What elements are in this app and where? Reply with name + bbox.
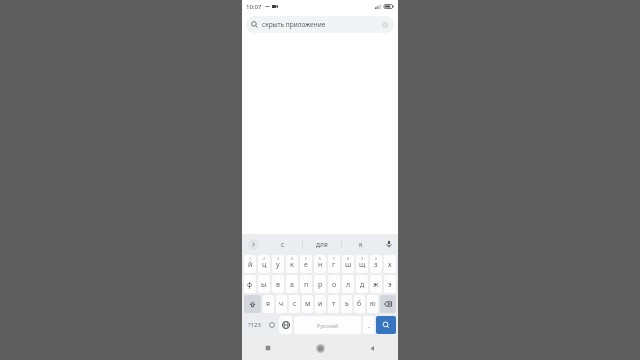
button[interactable]: с xyxy=(264,234,302,254)
button[interactable]: т xyxy=(328,295,339,313)
staticText: 10:07 xyxy=(246,3,262,11)
staticText: ш xyxy=(345,260,352,270)
staticText: п xyxy=(304,280,309,290)
button[interactable]: ч xyxy=(276,295,287,313)
staticText: ю xyxy=(370,299,376,309)
staticText: ф xyxy=(247,280,253,290)
staticText: р xyxy=(318,280,323,290)
staticText: к xyxy=(290,260,294,270)
button[interactable]: к xyxy=(342,234,380,254)
staticText: д xyxy=(360,280,365,290)
staticText: ч xyxy=(279,299,284,309)
button[interactable]: Back xyxy=(346,336,398,360)
button[interactable]: Voice input xyxy=(380,234,398,254)
staticText: . xyxy=(368,321,370,330)
button[interactable]: для xyxy=(303,234,341,254)
button[interactable]: Change language xyxy=(279,316,292,334)
button[interactable]: 7 xyxy=(328,255,340,273)
button[interactable]: ь xyxy=(341,295,352,313)
button[interactable]: 8 xyxy=(342,255,354,273)
button[interactable]: д xyxy=(356,275,368,293)
staticText: 6 xyxy=(319,256,322,261)
staticText: а xyxy=(290,280,294,290)
button[interactable]: 5 xyxy=(300,255,312,273)
staticText: к xyxy=(359,240,363,249)
staticText: в xyxy=(276,280,280,290)
staticText: б xyxy=(357,299,362,309)
staticText: м xyxy=(305,299,311,309)
staticText: 0 xyxy=(375,256,378,261)
staticText: 5 xyxy=(305,256,308,261)
button[interactable]: 3 xyxy=(272,255,284,273)
staticText: й xyxy=(248,260,253,270)
button[interactable]: ?123 xyxy=(244,316,265,334)
staticText: э xyxy=(388,280,392,290)
button[interactable]: х xyxy=(384,255,396,273)
button[interactable]: Русский xyxy=(294,316,361,334)
button[interactable]: ю xyxy=(367,295,378,313)
button[interactable]: а xyxy=(286,275,298,293)
staticText: ж xyxy=(373,280,379,290)
button[interactable]: 1 xyxy=(244,255,256,273)
staticText: н xyxy=(318,260,323,270)
button[interactable]: ы xyxy=(258,275,270,293)
staticText: х xyxy=(388,260,392,270)
staticText: ?123 xyxy=(248,321,261,329)
staticText: 2 xyxy=(263,256,266,261)
button[interactable]: п xyxy=(300,275,312,293)
button[interactable]: Emoji xyxy=(267,316,277,334)
button[interactable]: 0 xyxy=(370,255,382,273)
staticText: ц xyxy=(262,260,267,270)
staticText: 9 xyxy=(361,256,364,261)
staticText: щ xyxy=(359,260,366,270)
button[interactable]: 6 xyxy=(314,255,326,273)
button[interactable]: . xyxy=(363,316,374,334)
button[interactable]: More suggestions xyxy=(242,234,264,254)
button[interactable]: о xyxy=(328,275,340,293)
staticText: ь xyxy=(345,299,349,309)
button[interactable]: Search xyxy=(376,316,396,334)
button[interactable]: с xyxy=(289,295,300,313)
staticText: е xyxy=(304,260,308,270)
staticText: у xyxy=(276,260,280,270)
staticText: о xyxy=(332,280,337,290)
staticText: с xyxy=(281,240,285,249)
button[interactable]: Backspace xyxy=(380,295,396,313)
staticText: скрыть приложение xyxy=(262,20,326,29)
button[interactable]: 4 xyxy=(286,255,298,273)
staticText: г xyxy=(332,260,336,270)
button[interactable]: ж xyxy=(370,275,382,293)
staticText: 8 xyxy=(347,256,350,261)
staticText: для xyxy=(316,240,328,249)
staticText: я xyxy=(266,299,271,309)
staticText: Русский xyxy=(317,322,339,329)
staticText: и xyxy=(318,299,323,309)
staticText: 4 xyxy=(291,256,294,261)
button[interactable]: и xyxy=(315,295,326,313)
button[interactable]: ф xyxy=(244,275,256,293)
staticText: ы xyxy=(261,280,267,290)
button[interactable]: б xyxy=(354,295,365,313)
staticText: 3 xyxy=(277,256,280,261)
button[interactable]: в xyxy=(272,275,284,293)
button[interactable]: м xyxy=(302,295,313,313)
staticText: 7 xyxy=(333,256,336,261)
staticText: с xyxy=(293,299,297,309)
button[interactable]: э xyxy=(384,275,396,293)
button[interactable]: р xyxy=(314,275,326,293)
staticText: 1 xyxy=(249,256,252,261)
button[interactable]: Clear xyxy=(380,20,389,29)
button[interactable]: Home xyxy=(294,336,346,360)
staticText: т xyxy=(332,299,336,309)
staticText: л xyxy=(346,280,351,290)
button[interactable]: Recent apps xyxy=(242,336,294,360)
button[interactable]: л xyxy=(342,275,354,293)
button[interactable]: Shift xyxy=(244,295,261,313)
button[interactable]: 9 xyxy=(356,255,368,273)
button[interactable]: скрыть приложение xyxy=(246,16,394,33)
button[interactable]: я xyxy=(263,295,274,313)
button[interactable]: 2 xyxy=(258,255,270,273)
staticText: з xyxy=(374,260,378,270)
